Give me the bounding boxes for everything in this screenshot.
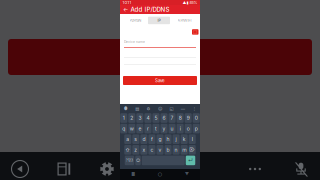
- button[interactable]: Screenshot: [51, 156, 77, 180]
- staticText: k: [183, 136, 186, 142]
- staticText: e: [138, 125, 141, 132]
- staticText: f: [151, 136, 153, 142]
- staticText: h: [167, 136, 170, 142]
- staticText: ⌦: [189, 147, 195, 153]
- staticText: ○: [157, 171, 162, 178]
- staticText: r: [147, 125, 149, 132]
- staticText: 8: [179, 115, 182, 121]
- staticText: b: [167, 147, 170, 153]
- staticText: g: [158, 136, 161, 142]
- staticText: Add IP/DDNS: [130, 6, 169, 13]
- staticText: ↵: [188, 157, 193, 163]
- staticText: Device name: [124, 40, 145, 44]
- staticText: a: [126, 136, 129, 142]
- staticText: j: [176, 136, 177, 142]
- staticText: m: [182, 147, 186, 153]
- staticText: x: [142, 147, 145, 153]
- staticText: 9: [187, 115, 190, 121]
- staticText: 1: [123, 115, 125, 121]
- button[interactable]: Save: [123, 76, 197, 85]
- staticText: 3: [138, 115, 141, 121]
- staticText: d: [142, 136, 145, 142]
- staticText: ☺: [136, 158, 140, 163]
- staticText: z: [134, 147, 137, 153]
- staticText: AP/WIFI: [177, 18, 191, 23]
- staticText: n: [175, 147, 178, 153]
- staticText: 4: [146, 115, 149, 121]
- staticText: ⋮: [192, 106, 196, 111]
- button[interactable]: P2P/SN: [123, 16, 148, 24]
- staticText: 7: [171, 115, 174, 121]
- staticText: ●: [124, 106, 128, 111]
- staticText: P2P/SN: [129, 18, 141, 23]
- staticText: 6: [162, 115, 165, 121]
- staticText: 5: [154, 115, 157, 121]
- button[interactable]: Scan QR code: [192, 29, 198, 35]
- button[interactable]: Back: [7, 156, 33, 180]
- button[interactable]: More options: [242, 156, 268, 180]
- staticText: —: [181, 106, 185, 111]
- staticText: 2: [130, 115, 133, 121]
- staticText: l: [192, 136, 193, 142]
- staticText: 10:11: [122, 0, 131, 5]
- staticText: ☺: [158, 106, 162, 111]
- staticText: ⬚: [193, 30, 197, 34]
- staticText: p: [195, 125, 198, 132]
- staticText: s: [134, 136, 137, 142]
- staticText: t: [155, 125, 157, 132]
- button[interactable]: Mute microphone: [288, 156, 314, 180]
- staticText: IP: [157, 18, 160, 23]
- staticText: o: [187, 125, 190, 132]
- button[interactable]: IP: [148, 17, 170, 24]
- staticText: v: [158, 147, 161, 153]
- staticText: i: [180, 125, 181, 132]
- staticText: ?123: [126, 158, 133, 162]
- staticText: y: [162, 125, 165, 132]
- staticText: ▼: [185, 172, 189, 177]
- button[interactable]: Back: [173, 169, 200, 180]
- button[interactable]: AP/WIFI: [172, 16, 197, 24]
- staticText: ▲▮ 85%: [182, 0, 197, 5]
- staticText: 0: [195, 115, 198, 121]
- staticText: ⚙: [147, 106, 151, 111]
- staticText: q: [122, 125, 125, 132]
- button[interactable]: Recent apps: [120, 169, 147, 180]
- staticText: u: [171, 125, 174, 132]
- button[interactable]: Settings: [94, 156, 120, 180]
- staticText: ▤: [135, 106, 139, 111]
- staticText: c: [150, 147, 153, 153]
- button[interactable]: Home: [147, 169, 173, 180]
- staticText: ■: [131, 172, 135, 177]
- staticText: ←: [123, 6, 128, 13]
- staticText: w: [130, 125, 134, 132]
- staticText: Save: [155, 78, 165, 83]
- staticText: ⇧: [125, 147, 130, 153]
- staticText: ◱: [169, 106, 173, 111]
